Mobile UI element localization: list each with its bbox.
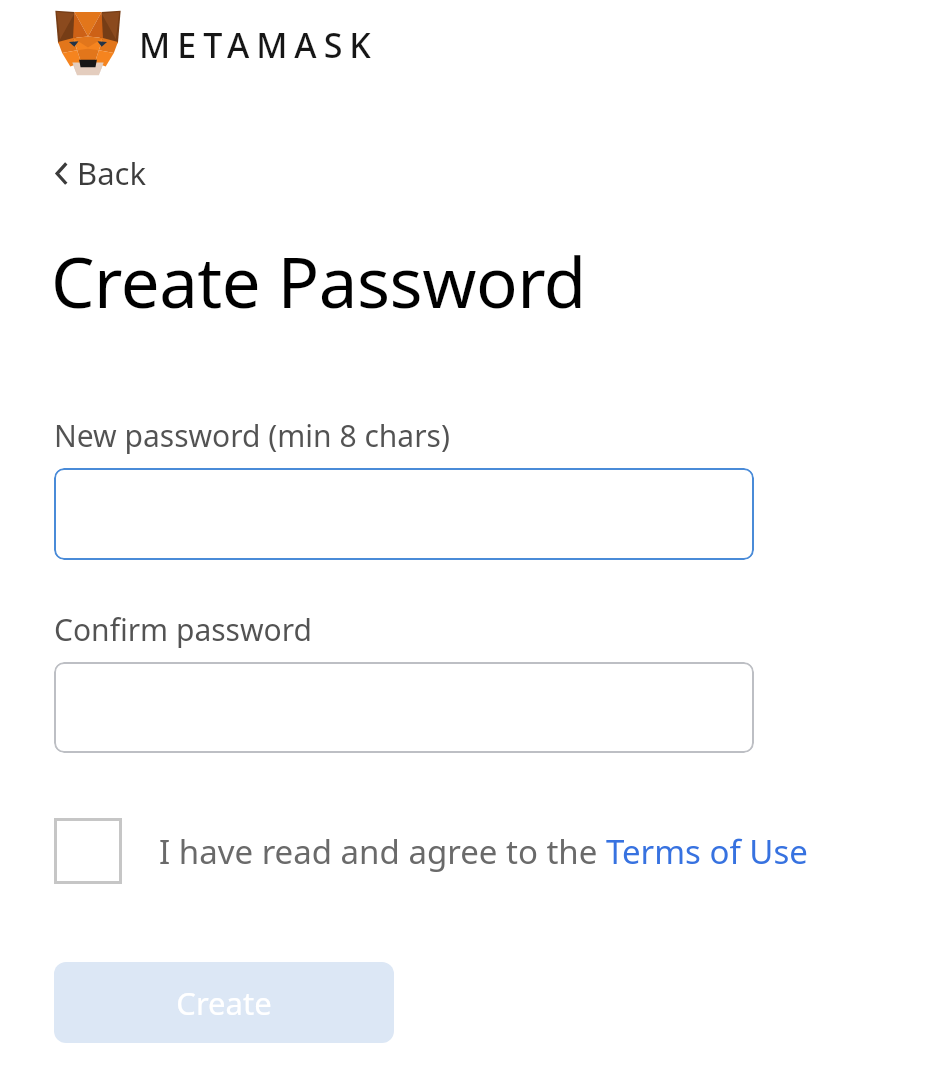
button[interactable]: Create (54, 962, 394, 1043)
other: Agree to Terms of Use checkbox (54, 818, 122, 884)
staticText: New password (min 8 chars) (54, 415, 450, 456)
staticText: METAMASK (139, 22, 378, 68)
button[interactable]: New password field (54, 468, 754, 560)
staticText: Create Password (51, 234, 586, 328)
staticText: Create (176, 982, 272, 1024)
staticText: Back (77, 152, 146, 194)
staticText: Confirm password (54, 609, 312, 650)
staticText: I have read and agree to the Terms of Us… (159, 829, 808, 874)
button[interactable]: Back (50, 148, 150, 198)
button[interactable]: Agree to Terms of Use checkbox (54, 818, 866, 884)
button[interactable]: Confirm password field (54, 662, 754, 753)
